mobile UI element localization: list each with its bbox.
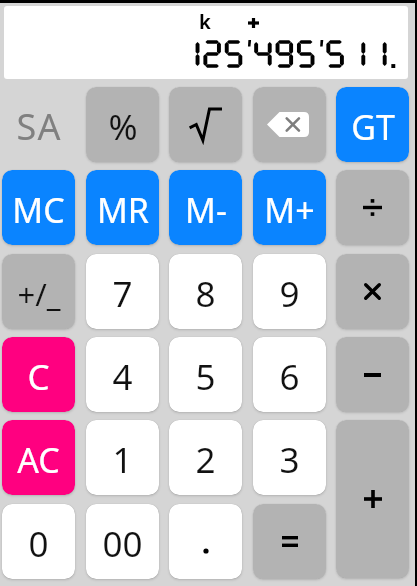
staticText: 6 xyxy=(279,353,300,401)
staticText: k xyxy=(199,9,211,35)
staticText: 4 xyxy=(112,353,133,401)
button[interactable]: Divide xyxy=(336,170,409,245)
button[interactable]: 8 xyxy=(169,254,242,329)
staticText: 5 xyxy=(195,353,216,401)
button[interactable]: 2 xyxy=(169,420,242,495)
staticText: SA xyxy=(16,102,62,151)
button[interactable]: Minus xyxy=(336,337,409,412)
button[interactable]: 00 xyxy=(86,504,159,579)
button[interactable]: C xyxy=(2,337,75,412)
button[interactable]: M- xyxy=(169,170,242,245)
staticText: 2 xyxy=(195,436,216,484)
button[interactable]: 3 xyxy=(253,420,326,495)
button[interactable]: MC xyxy=(2,170,75,245)
staticText: MC xyxy=(12,187,65,233)
staticText: 0 xyxy=(28,520,49,568)
button[interactable]: MR xyxy=(86,170,159,245)
staticText: % xyxy=(108,103,138,151)
button[interactable]: 9 xyxy=(253,254,326,329)
staticText: GT xyxy=(351,104,395,150)
button[interactable]: 5 xyxy=(169,337,242,412)
button[interactable]: 0 xyxy=(2,504,75,579)
staticText: AC xyxy=(17,437,60,483)
staticText: 8 xyxy=(195,270,216,318)
button[interactable]: AC xyxy=(2,420,75,495)
staticText: C xyxy=(27,353,50,401)
button[interactable]: Multiply xyxy=(336,254,409,329)
staticText: +/_ xyxy=(17,273,61,315)
button[interactable]: 1 xyxy=(86,420,159,495)
staticText: 9 xyxy=(279,270,300,318)
button[interactable]: 6 xyxy=(253,337,326,412)
button[interactable]: Equals xyxy=(253,504,326,579)
button[interactable]: Square root xyxy=(169,87,242,162)
staticText: 00 xyxy=(102,520,143,568)
button[interactable]: Backspace xyxy=(253,87,326,162)
button[interactable]: SA xyxy=(2,87,75,162)
button[interactable]: GT xyxy=(336,87,409,162)
staticText: M+ xyxy=(264,187,315,233)
staticText: 3 xyxy=(279,436,300,484)
button[interactable]: Plus xyxy=(336,420,409,578)
button[interactable]: 4 xyxy=(86,337,159,412)
button[interactable]: 7 xyxy=(86,254,159,329)
staticText: 7 xyxy=(112,270,133,318)
button[interactable]: Decimal point xyxy=(169,504,242,579)
button[interactable]: +/_ xyxy=(2,254,75,329)
button[interactable]: % xyxy=(86,87,159,162)
staticText: MR xyxy=(97,187,149,233)
staticText: M- xyxy=(185,187,227,233)
button[interactable]: M+ xyxy=(253,170,326,245)
staticText: 1 xyxy=(112,436,133,484)
